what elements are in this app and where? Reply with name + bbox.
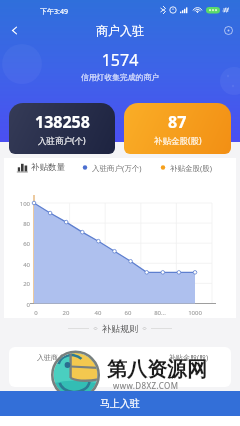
staticText: 0 (4, 301, 30, 309)
staticText: 60 (4, 240, 30, 248)
staticText: 20 (57, 309, 75, 317)
staticText: 入驻商户(万个) (92, 163, 142, 173)
staticText: 补贴金股(股) (169, 353, 209, 363)
staticText: 1574 (0, 49, 240, 71)
button[interactable]: 138258 (9, 103, 115, 154)
staticText: 20 (4, 280, 30, 288)
button[interactable]: 马上入驻 (0, 391, 240, 416)
button[interactable]: Help (216, 18, 240, 42)
staticText: 入驻商户(个) (37, 353, 77, 363)
staticText: 138258 (35, 111, 90, 133)
staticText: 第八资源网 (107, 357, 207, 382)
staticText: 60 (119, 309, 137, 317)
staticText: 87 (168, 111, 187, 133)
staticText: 信用灯收集完成的商户 (0, 72, 240, 82)
staticText: 100 (4, 200, 30, 208)
staticText: 入驻商户(个) (38, 135, 86, 147)
staticText: 80... (151, 309, 169, 317)
button[interactable]: 87 (124, 103, 231, 154)
staticText: 40 (89, 309, 107, 317)
staticText: 1000 (186, 309, 204, 317)
staticText: 0 (27, 309, 45, 317)
staticText: 补贴金股(股) (170, 163, 212, 173)
staticText: 马上入驻 (100, 397, 140, 410)
staticText: 40 (4, 261, 30, 269)
button[interactable]: Back (0, 18, 28, 42)
staticText: 下午3:49 (40, 7, 68, 17)
staticText: 商户入驻 (96, 23, 144, 38)
staticText: 80 (4, 220, 30, 228)
staticText: 补贴金股(股) (154, 135, 202, 147)
staticText: 补贴数量 (31, 162, 65, 173)
staticText: www.D8XZ.COM (113, 380, 179, 391)
staticText: 补贴规则 (102, 323, 138, 334)
